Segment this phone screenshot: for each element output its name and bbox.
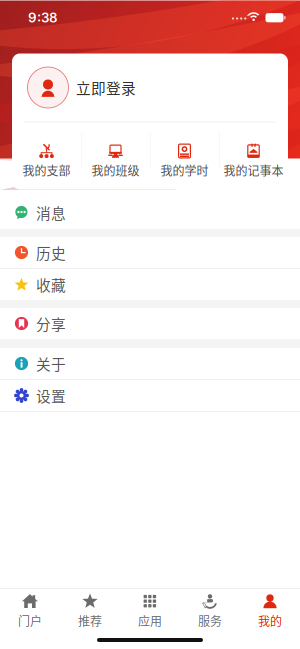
staticText: 分享: [36, 313, 66, 334]
button[interactable]: 消息: [0, 196, 300, 229]
staticText: 立即登录: [76, 77, 136, 98]
button[interactable]: 立即登录: [12, 53, 288, 121]
staticText: 我的: [258, 612, 282, 629]
staticText: 门户: [18, 612, 42, 629]
staticText: 服务: [198, 612, 222, 629]
button[interactable]: 关于: [0, 348, 300, 379]
button[interactable]: 我的学时: [150, 122, 219, 189]
staticText: 消息: [36, 202, 66, 223]
staticText: 应用: [138, 612, 162, 629]
staticText: 我的记事本: [223, 161, 283, 179]
staticText: 设置: [36, 385, 66, 406]
button[interactable]: 我的支部: [12, 122, 81, 189]
button[interactable]: 推荐: [60, 589, 120, 630]
button[interactable]: 门户: [0, 589, 60, 630]
staticText: 我的班级: [91, 161, 139, 179]
button[interactable]: 服务: [180, 589, 240, 630]
button[interactable]: 分享: [0, 308, 300, 339]
button[interactable]: 我的班级: [81, 122, 150, 189]
button[interactable]: 我的: [240, 589, 300, 630]
button[interactable]: 应用: [120, 589, 180, 630]
button[interactable]: 我的记事本: [219, 122, 288, 189]
staticText: 我的学时: [160, 161, 208, 179]
staticText: 推荐: [78, 612, 102, 629]
staticText: 关于: [36, 353, 66, 374]
staticText: 我的支部: [22, 161, 70, 179]
staticText: 9:38: [28, 9, 58, 26]
button[interactable]: 历史: [0, 237, 300, 268]
staticText: 历史: [36, 242, 66, 263]
staticText: 收藏: [36, 274, 66, 295]
button[interactable]: 收藏: [0, 269, 300, 300]
button[interactable]: 设置: [0, 380, 300, 411]
